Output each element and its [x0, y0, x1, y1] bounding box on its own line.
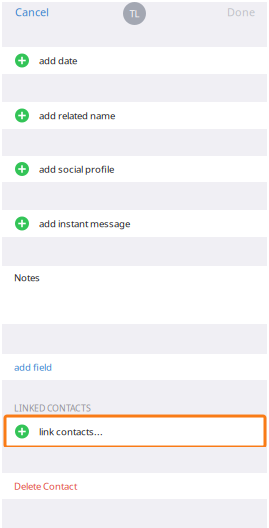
button[interactable]: Contact photo	[123, 2, 146, 25]
staticText: add date	[39, 54, 77, 67]
button[interactable]: add social profile	[2, 156, 267, 182]
staticText: add social profile	[39, 162, 114, 176]
button[interactable]: Delete Contact	[2, 473, 267, 499]
staticText: Notes	[14, 271, 40, 284]
staticText: add related name	[39, 109, 115, 122]
button[interactable]: add instant message	[2, 210, 267, 237]
button[interactable]: add field	[2, 354, 267, 380]
staticText: TL	[129, 7, 139, 20]
button[interactable]: Done	[219, 2, 267, 22]
staticText: Done	[227, 5, 255, 19]
button[interactable]: add related name	[2, 102, 267, 129]
button[interactable]: Cancel	[2, 2, 57, 22]
staticText: Cancel	[15, 5, 49, 19]
button[interactable]: add date	[2, 47, 267, 74]
staticText: add field	[14, 360, 52, 374]
staticText: LINKED CONTACTS	[14, 402, 91, 414]
staticText: link contacts...	[39, 425, 103, 438]
button[interactable]: link contacts...	[5, 416, 265, 447]
staticText: Delete Contact	[14, 479, 77, 493]
staticText: add instant message	[39, 217, 130, 230]
